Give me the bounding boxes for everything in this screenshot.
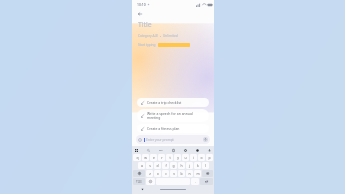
staticText: GIF (159, 149, 163, 152)
button[interactable]: Backspace (202, 170, 213, 177)
button[interactable]: Send (203, 137, 208, 142)
button[interactable]: s (146, 162, 153, 169)
button[interactable]: x (154, 170, 161, 177)
staticText: Title (138, 20, 152, 29)
staticText: d (156, 163, 159, 168)
button[interactable]: u (182, 154, 189, 161)
button[interactable]: Voice input (207, 148, 212, 153)
button[interactable]: Keyboard modes (134, 148, 139, 153)
button[interactable]: v (170, 170, 177, 177)
staticText: . (195, 179, 196, 184)
staticText: j (189, 163, 190, 168)
button[interactable]: Clipboard (171, 148, 176, 153)
button[interactable]: i (190, 154, 197, 161)
button[interactable]: Back (136, 10, 143, 17)
staticText: q (136, 155, 139, 160)
button[interactable]: o (198, 154, 205, 161)
button[interactable]: a (138, 162, 145, 169)
staticText: w (144, 155, 147, 160)
button[interactable]: g (170, 162, 177, 169)
button[interactable]: r (158, 154, 165, 161)
staticText: e (153, 155, 155, 160)
staticText: 10:10 (137, 2, 146, 7)
staticText: Create a fitness plan (147, 126, 180, 131)
button[interactable]: Search (146, 148, 151, 153)
button[interactable]: Back (140, 187, 145, 192)
button[interactable]: . (191, 178, 199, 185)
button[interactable]: Settings (183, 148, 188, 153)
button[interactable]: Emoji (146, 178, 155, 185)
staticText: Category A-B (138, 34, 158, 38)
staticText: p (208, 155, 211, 160)
button[interactable]: f (162, 162, 169, 169)
button[interactable]: d (154, 162, 161, 169)
button[interactable]: z (146, 170, 153, 177)
staticText: z (149, 171, 151, 176)
button[interactable]: c (162, 170, 169, 177)
button[interactable]: y (174, 154, 181, 161)
staticText: v (173, 171, 175, 176)
button[interactable]: t (166, 154, 173, 161)
staticText: ?123 (136, 180, 142, 184)
button[interactable]: Shift (133, 170, 145, 177)
staticText: h (180, 163, 183, 168)
staticText: Create a trip checklist (147, 100, 182, 105)
button[interactable]: j (186, 162, 193, 169)
button[interactable]: Write a speech for an annual meeting (137, 109, 209, 122)
button[interactable]: GIF (158, 148, 163, 153)
button[interactable]: Enter (200, 178, 213, 185)
button[interactable]: n (186, 170, 193, 177)
button[interactable]: l (202, 162, 209, 169)
staticText: b (180, 171, 183, 176)
button[interactable]: Create a trip checklist (137, 98, 209, 107)
staticText: Write a speech for an annual meeting (147, 111, 193, 120)
staticText: u (184, 155, 187, 160)
button[interactable]: b (178, 170, 185, 177)
staticText: r (161, 155, 163, 160)
staticText: g (172, 163, 175, 168)
staticText: Enter your prompt (146, 138, 174, 142)
staticText: s (149, 163, 151, 168)
staticText: f (165, 163, 167, 168)
staticText: m (196, 171, 200, 176)
button[interactable]: q (133, 154, 141, 161)
button[interactable]: k (194, 162, 201, 169)
button[interactable]: Enter your prompt (136, 135, 210, 144)
button[interactable]: h (178, 162, 185, 169)
staticText: x (157, 171, 159, 176)
button[interactable] (158, 43, 190, 47)
button[interactable]: p (206, 154, 213, 161)
staticText: t (169, 155, 171, 160)
staticText: Unlimited (163, 34, 178, 38)
button[interactable]: m (194, 170, 201, 177)
button[interactable]: Create a fitness plan (137, 124, 209, 133)
staticText: k (197, 163, 199, 168)
staticText: o (200, 155, 203, 160)
button[interactable]: w (142, 154, 149, 161)
staticText: Start typing (138, 43, 156, 47)
staticText: c (165, 171, 167, 176)
button[interactable]: ?123 (133, 178, 145, 185)
staticText: l (205, 163, 206, 168)
staticText: a (141, 163, 143, 168)
staticText: y (177, 155, 179, 160)
button[interactable]: Stickers (195, 148, 200, 153)
staticText: n (188, 171, 191, 176)
staticText: i (193, 155, 194, 160)
button[interactable]: e (150, 154, 157, 161)
